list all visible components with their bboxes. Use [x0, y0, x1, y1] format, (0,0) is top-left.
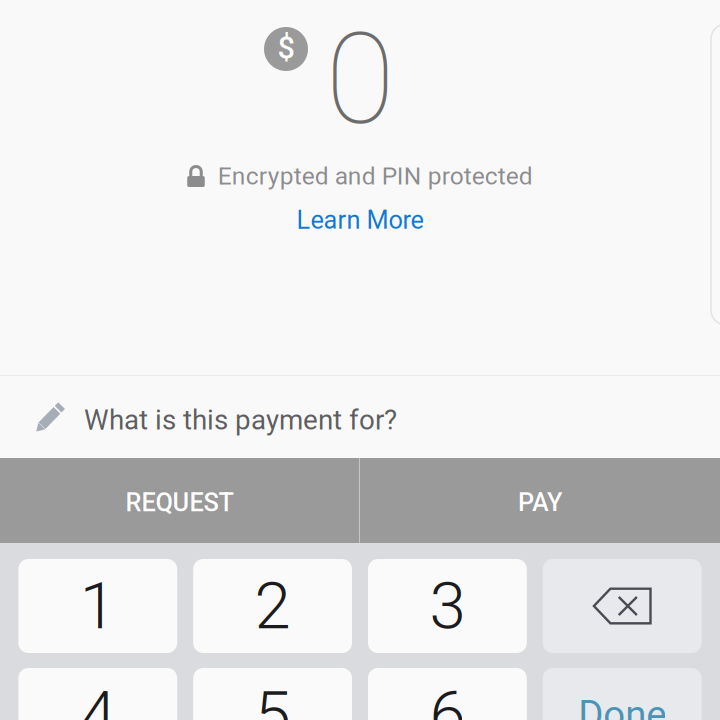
staticText: Learn More [296, 205, 423, 235]
staticText: 5 [255, 677, 291, 720]
button[interactable]: 6 [368, 668, 527, 720]
staticText: Encrypted and PIN protected [218, 162, 533, 190]
button[interactable]: Done [543, 668, 702, 720]
staticText: 0 [325, 5, 394, 154]
staticText: 4 [80, 677, 116, 720]
button[interactable]: 1 [18, 559, 177, 653]
staticText: PAY [518, 488, 562, 517]
staticText: 6 [429, 677, 465, 720]
staticText: Done [578, 692, 666, 720]
button[interactable]: What is this payment for? [0, 376, 720, 458]
button[interactable]: REQUEST [0, 458, 359, 543]
button[interactable]: Delete [543, 559, 702, 653]
button[interactable]: Learn More [260, 205, 460, 235]
staticText: REQUEST [125, 488, 233, 517]
button[interactable]: 5 [193, 668, 352, 720]
button[interactable]: 3 [368, 559, 527, 653]
staticText: 2 [255, 568, 291, 644]
button[interactable]: 4 [18, 668, 177, 720]
staticText: 3 [429, 568, 465, 644]
staticText: What is this payment for? [84, 404, 397, 436]
staticText: 1 [80, 568, 116, 644]
button[interactable]: 2 [193, 559, 352, 653]
button[interactable]: PAY [360, 458, 720, 543]
staticText: $ [277, 30, 294, 66]
